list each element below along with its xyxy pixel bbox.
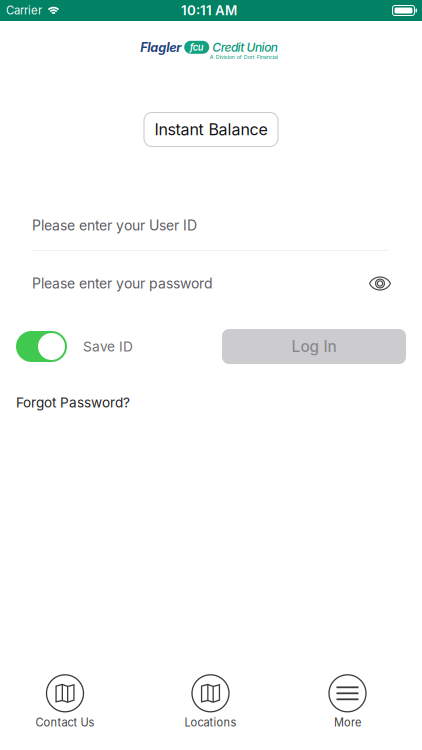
staticText: Log In [291,337,336,356]
staticText: Save ID [83,338,133,355]
staticText: Locations [184,716,236,729]
button[interactable]: More [329,675,366,729]
staticText: fcu [190,42,204,53]
button[interactable]: Log In [222,329,406,364]
button[interactable]: Show password [367,271,393,295]
staticText: Credit Union [212,40,278,54]
staticText: Carrier [6,4,42,17]
staticText: Instant Balance [154,120,267,139]
staticText: Please enter your User ID [32,217,197,234]
button[interactable]: Forgot Password? [16,394,130,411]
button[interactable]: Instant Balance [144,112,278,146]
button[interactable]: Contact Us [35,675,94,729]
staticText: Contact Us [35,716,94,729]
staticText: Please enter your password [32,275,213,292]
staticText: Forgot Password? [16,394,130,411]
button[interactable]: Locations [184,675,236,729]
staticText: Flagler [140,40,181,55]
staticText: More [334,716,361,729]
button[interactable]: Save ID [16,331,67,362]
staticText: A Division of Dort Financial [210,54,278,60]
staticText: 10:11 AM [181,3,237,18]
